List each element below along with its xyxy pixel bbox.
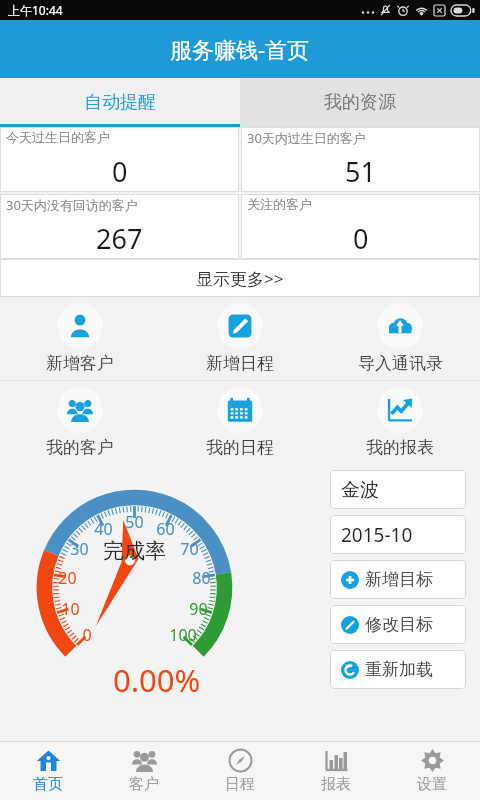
button[interactable]: 30天内过生日的客户	[241, 127, 480, 192]
staticText: 关注的客户	[247, 196, 312, 212]
staticText: 上午10:44	[8, 2, 63, 18]
staticText: 新增客户	[46, 353, 114, 374]
button[interactable]: 今天过生日的客户	[0, 127, 239, 192]
staticText: 重新加载	[365, 659, 433, 680]
button[interactable]: 我的日程	[160, 381, 320, 464]
staticText: 我的资源	[324, 91, 396, 114]
staticText: 我的报表	[366, 437, 434, 458]
button[interactable]: 首页	[0, 742, 96, 800]
staticText: 50	[125, 511, 144, 533]
button[interactable]: 新增目标	[330, 560, 466, 599]
staticText: 导入通讯录	[358, 353, 443, 374]
other: 新增目标	[341, 571, 359, 589]
staticText: 首页	[33, 775, 63, 794]
staticText: 服务赚钱-首页	[170, 34, 310, 64]
staticText: 60	[156, 518, 175, 540]
other: 重新加载	[341, 661, 359, 679]
staticText: 我的客户	[46, 437, 114, 458]
button[interactable]: 导入通讯录	[320, 297, 480, 380]
button[interactable]: 30天内没有回访的客户	[0, 194, 239, 259]
staticText: 金波	[341, 478, 379, 502]
staticText: 40	[94, 518, 113, 540]
other: 修改目标	[341, 616, 359, 634]
button[interactable]: 显示更多>>	[0, 259, 480, 297]
staticText: 今天过生日的客户	[6, 129, 110, 145]
button[interactable]: 重新加载	[330, 650, 466, 689]
staticText: 0	[82, 624, 92, 646]
staticText: 0	[353, 220, 369, 257]
staticText: 51	[345, 153, 376, 190]
staticText: 90	[189, 598, 208, 620]
button[interactable]: 自动提醒	[0, 78, 240, 127]
staticText: 客户	[129, 775, 159, 794]
staticText: 267	[96, 220, 143, 257]
button[interactable]: 客户	[96, 742, 192, 800]
button[interactable]: 2015-10	[330, 515, 466, 554]
staticText: 完成率	[103, 538, 166, 564]
staticText: 70	[180, 538, 199, 560]
button[interactable]: 修改目标	[330, 605, 466, 644]
staticText: 设置	[417, 775, 447, 794]
staticText: 100	[169, 624, 197, 646]
staticText: 30	[70, 538, 89, 560]
staticText: 报表	[321, 775, 351, 794]
staticText: 0	[112, 153, 128, 190]
staticText: 20	[58, 567, 77, 589]
staticText: 0.00%	[113, 659, 201, 701]
button[interactable]: 新增日程	[160, 297, 320, 380]
button[interactable]: 新增客户	[0, 297, 160, 380]
staticText: 显示更多>>	[196, 267, 284, 290]
button[interactable]: 我的客户	[0, 381, 160, 464]
button[interactable]: 金波	[330, 470, 466, 509]
staticText: 日程	[225, 775, 255, 794]
staticText: 10	[61, 598, 80, 620]
button[interactable]: 我的资源	[240, 78, 480, 127]
staticText: 30天内没有回访的客户	[6, 196, 138, 214]
button[interactable]: 日程	[192, 742, 288, 800]
staticText: 2015-10	[341, 522, 413, 548]
button[interactable]: 我的报表	[320, 381, 480, 464]
staticText: 新增日程	[206, 353, 274, 374]
button[interactable]: 设置	[384, 742, 480, 800]
staticText: 修改目标	[365, 614, 433, 635]
staticText: 新增目标	[365, 569, 433, 590]
staticText: 自动提醒	[84, 91, 156, 114]
staticText: 我的日程	[206, 437, 274, 458]
button[interactable]: 报表	[288, 742, 384, 800]
staticText: 80	[192, 567, 211, 589]
staticText: 30天内过生日的客户	[247, 129, 366, 147]
button[interactable]: 关注的客户	[241, 194, 480, 259]
